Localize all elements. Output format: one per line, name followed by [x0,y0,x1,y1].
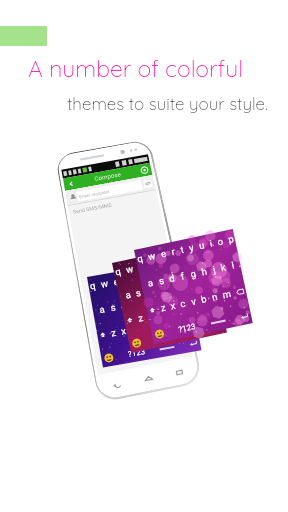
staticText: Enter recipient [79,188,111,199]
staticText: c [130,323,137,335]
staticText: x [147,310,154,322]
staticText: z [110,327,117,339]
staticText: Compose [94,171,122,183]
staticText: r [147,259,153,270]
staticText: w [125,263,135,275]
staticText: t [132,272,138,284]
staticText: b [175,304,183,316]
staticText: h [176,278,184,290]
button[interactable]: Home [141,370,157,387]
staticText: i [208,238,213,249]
staticText: w [147,250,157,262]
staticText: o [191,249,199,261]
staticText: b [150,320,157,332]
staticText: e [136,261,144,273]
staticText: y [140,271,147,283]
staticText: s [158,275,165,286]
button[interactable]: q [87,260,201,368]
staticText: j [163,292,168,304]
staticText: s [135,287,142,299]
staticText: l [205,272,210,284]
staticText: d [168,272,176,284]
staticText: r [123,274,129,285]
staticText: e [159,247,167,259]
staticText: h [200,265,208,277]
staticText: i [161,268,165,279]
staticText: y [164,255,171,267]
staticText: l [230,260,235,271]
staticText: t [156,257,162,268]
staticText: a [124,289,132,301]
staticText: x [169,300,176,311]
staticText: i [184,251,189,262]
staticText: o [168,266,176,278]
staticText: b [200,293,208,305]
staticText: z [159,302,167,314]
staticText: themes to suite your style. [67,93,268,114]
staticText: z [137,312,144,324]
button[interactable]: Back [63,163,152,191]
staticText: A number of colorful [28,54,244,83]
staticText: n [210,291,219,303]
staticText: v [190,295,197,307]
staticText: c [179,298,186,309]
staticText: n [160,318,168,330]
staticText: m [196,299,207,311]
staticText: k [219,261,227,273]
staticText: w [99,277,109,290]
staticText: g [140,296,148,308]
staticText: d [145,284,154,296]
staticText: n [186,301,194,313]
button[interactable]: Back [109,377,125,393]
staticText: j [187,276,193,287]
staticText: j [212,263,217,275]
staticText: m [221,288,232,300]
staticText: ?123 [178,322,197,334]
button[interactable]: Enter recipient [65,175,156,205]
button[interactable]: Recent apps [171,364,188,380]
staticText: f [156,282,162,294]
staticText: u [173,253,182,265]
staticText: g [165,280,173,292]
staticText: k [172,291,179,302]
staticText: v [165,306,172,318]
staticText: d [120,300,127,312]
staticText: q [136,252,144,264]
staticText: Send SMS/MMS [72,202,113,215]
staticText: a [146,277,154,289]
staticText: g [189,268,197,280]
staticText: m [171,315,182,328]
staticText: k [195,274,202,286]
staticText: s [110,302,117,313]
staticText: f [131,298,137,309]
staticText: y [188,242,195,253]
staticText: p [202,247,210,259]
staticText: u [197,239,206,251]
staticText: a [98,303,106,315]
staticText: r [170,246,176,257]
staticText: p [179,264,187,276]
staticText: q [114,265,122,277]
staticText: e [112,276,120,287]
staticText: c [155,308,163,320]
staticText: f [179,270,186,282]
button[interactable]: q [112,243,227,353]
button[interactable]: q [134,229,253,344]
staticText: h [152,294,160,306]
staticText: p [227,233,235,245]
button[interactable]: More options [137,163,152,177]
staticText: t [179,244,185,255]
staticText: ?123 [154,331,173,344]
staticText: x [120,325,127,337]
button[interactable]: Back [63,176,78,191]
staticText: o [216,235,224,247]
staticText: l [182,289,187,301]
staticText: u [150,269,157,281]
staticText: ?123 [127,347,147,359]
staticText: q [89,280,96,292]
